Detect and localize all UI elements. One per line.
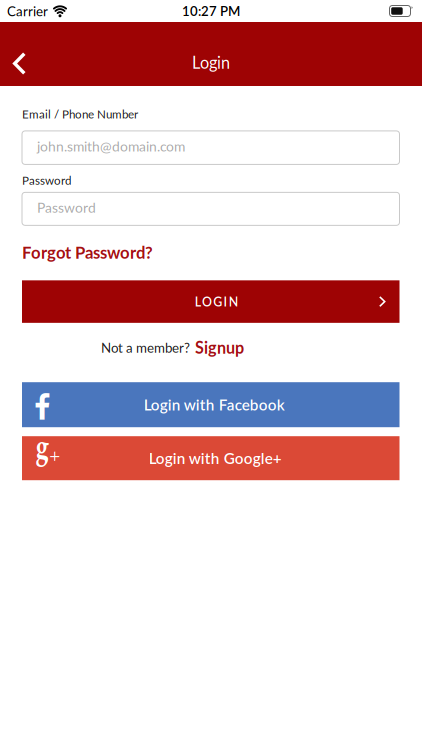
staticText: Not a member? [101,339,193,355]
staticText: Password [22,173,71,187]
staticText: + [49,443,59,466]
staticText:  [34,393,50,422]
button[interactable]: Login with Facebook [22,382,399,427]
staticText: G [213,294,222,309]
staticText: Email / Phone Number [22,107,138,121]
staticText: john.smith@domain.com [37,138,185,154]
staticText: 10:27 PM [182,3,240,19]
staticText: Carrier [7,3,48,19]
button[interactable]: Forgot Password? [22,242,153,262]
button[interactable]: Signup [195,338,244,357]
button[interactable]: Back [0,42,42,86]
staticText: O [202,294,212,309]
staticText: I [223,294,227,309]
button[interactable]: Login with Google+ [22,436,399,480]
staticText: Password [37,199,96,216]
staticText: Login [192,53,230,72]
button[interactable]: L [22,280,399,323]
staticText: Signup [195,338,244,357]
staticText: Login with Facebook [144,395,285,414]
staticText: N [229,294,239,309]
staticText: Login with Google+ [149,449,282,467]
staticText: Forgot Password? [22,242,153,262]
staticText: g [34,423,51,467]
staticText: L [195,294,201,309]
